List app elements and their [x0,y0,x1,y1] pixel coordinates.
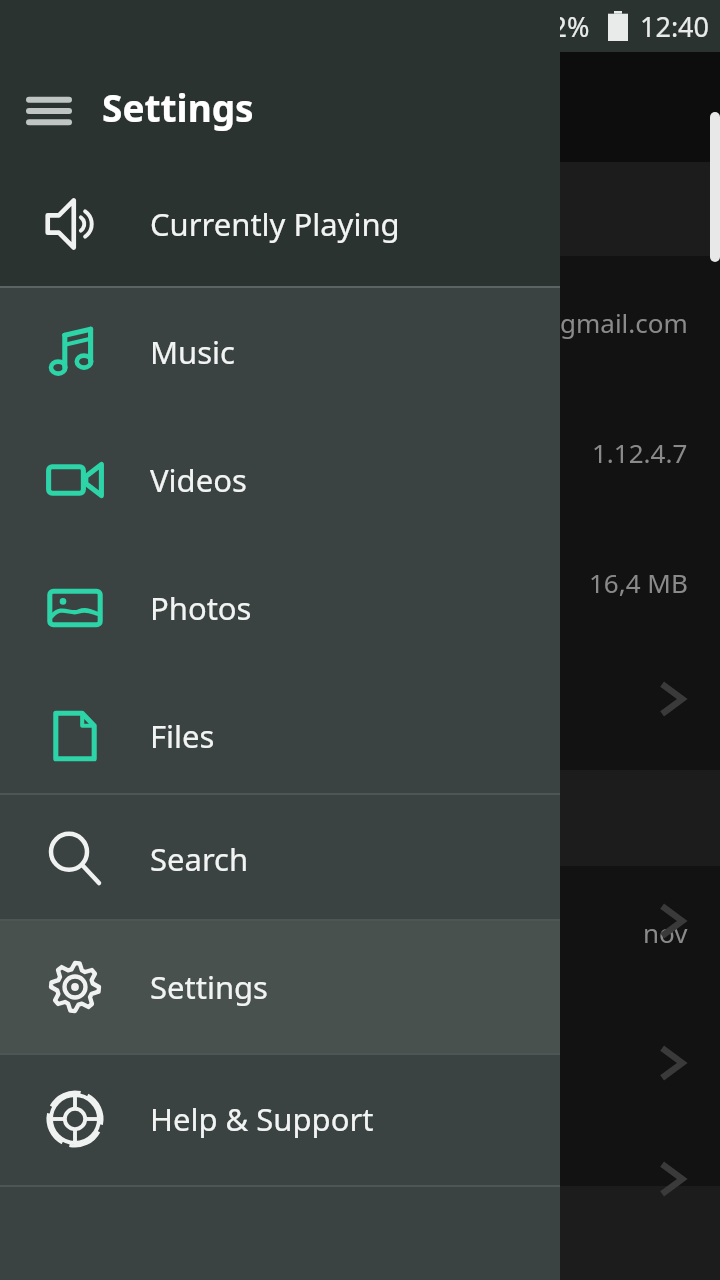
staticText: 12:40 [640,8,710,45]
staticText: Help & Support [150,1098,374,1140]
staticText: 1.12.4.7 [592,435,688,470]
button[interactable]: Files [0,672,560,800]
button[interactable]: Settings [0,921,560,1053]
staticText: Music [150,331,236,373]
staticText: nov [643,915,688,950]
staticText: Currently Playing [150,203,400,245]
staticText: gmail.com [560,305,688,340]
staticText: Videos [150,459,247,501]
staticText: Settings [150,966,268,1008]
staticText: Search [150,838,249,880]
button[interactable]: Currently Playing [0,162,560,286]
button[interactable]: Search [0,795,560,923]
staticText: Files [150,715,215,757]
staticText: 16,4 MB [589,565,688,600]
button[interactable]: Videos [0,416,560,544]
button[interactable]: Music [0,288,560,416]
button[interactable]: Photos [0,544,560,672]
button[interactable]: Help & Support [0,1055,560,1183]
staticText: 92% [536,8,590,45]
button[interactable]: Open navigation menu [14,76,84,146]
staticText: Photos [150,587,252,629]
staticText: Settings [102,82,254,132]
